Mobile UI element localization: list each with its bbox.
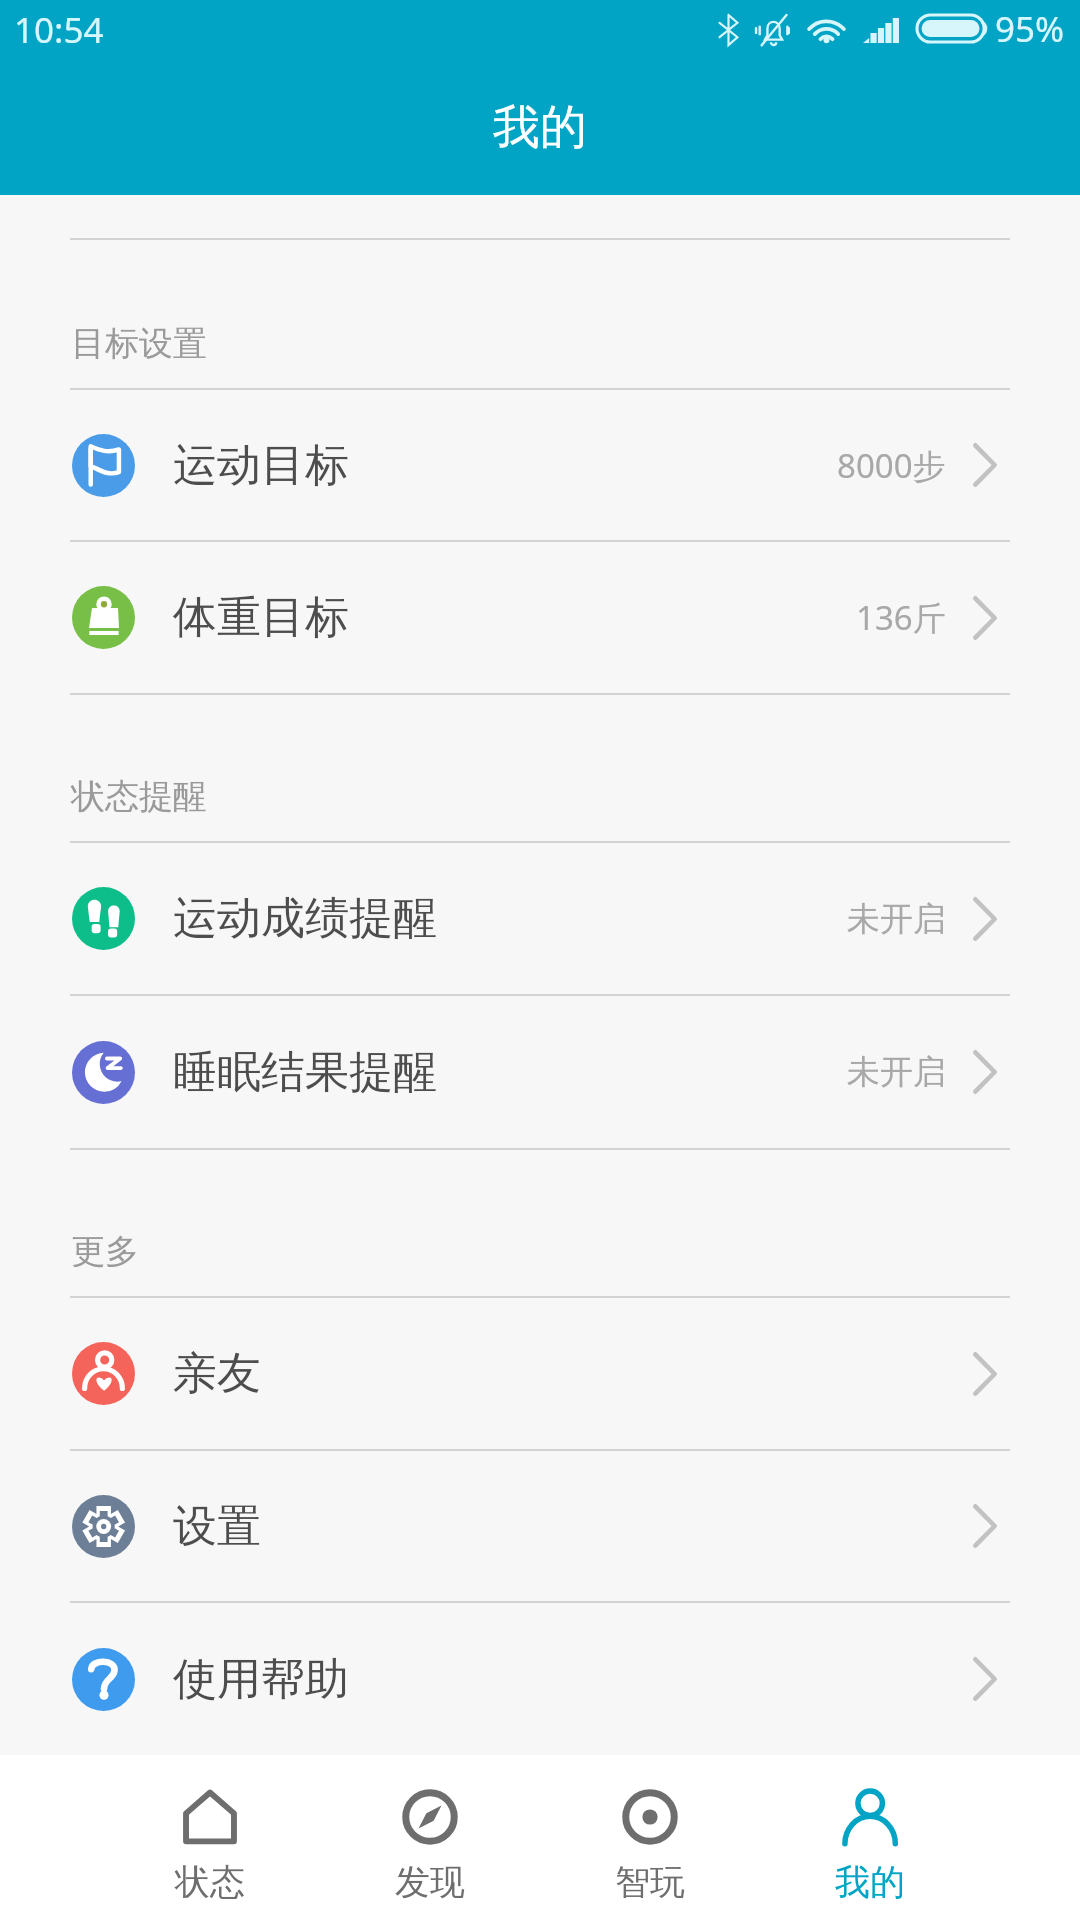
button[interactable]: 使用帮助 bbox=[0, 1603, 1080, 1755]
button[interactable]: 运动成绩提醒 bbox=[0, 843, 1080, 994]
staticText: 发现 bbox=[395, 1860, 465, 1904]
staticText: 使用帮助 bbox=[173, 1652, 349, 1707]
staticText: 136斤 bbox=[856, 595, 946, 640]
button[interactable]: 智玩 bbox=[540, 1755, 760, 1920]
staticText: 目标设置 bbox=[71, 322, 207, 365]
staticText: 10:54 bbox=[14, 6, 104, 54]
staticText: 95% bbox=[995, 5, 1065, 53]
staticText: 运动成绩提醒 bbox=[173, 891, 437, 946]
staticText: 体重目标 bbox=[173, 590, 349, 645]
staticText: 智玩 bbox=[615, 1860, 685, 1904]
staticText: 亲友 bbox=[173, 1346, 261, 1401]
button[interactable]: 我的 bbox=[760, 1755, 980, 1920]
button[interactable]: 状态 bbox=[100, 1755, 320, 1920]
staticText: 我的 bbox=[493, 98, 587, 157]
staticText: 设置 bbox=[173, 1499, 261, 1554]
button[interactable]: 运动目标 bbox=[0, 390, 1080, 540]
staticText: 更多 bbox=[71, 1230, 139, 1273]
staticText: 状态 bbox=[175, 1860, 245, 1904]
staticText: 8000步 bbox=[837, 443, 946, 488]
staticText: 未开启 bbox=[847, 1051, 946, 1093]
button[interactable]: 睡眠结果提醒 bbox=[0, 996, 1080, 1148]
button[interactable]: 亲友 bbox=[0, 1298, 1080, 1449]
button[interactable]: 体重目标 bbox=[0, 542, 1080, 693]
button[interactable]: 发现 bbox=[320, 1755, 540, 1920]
staticText: 我的 bbox=[835, 1860, 905, 1904]
staticText: 状态提醒 bbox=[71, 775, 207, 818]
button[interactable]: 设置 bbox=[0, 1451, 1080, 1601]
staticText: 睡眠结果提醒 bbox=[173, 1045, 437, 1100]
staticText: 运动目标 bbox=[173, 438, 349, 493]
staticText: 未开启 bbox=[847, 898, 946, 940]
